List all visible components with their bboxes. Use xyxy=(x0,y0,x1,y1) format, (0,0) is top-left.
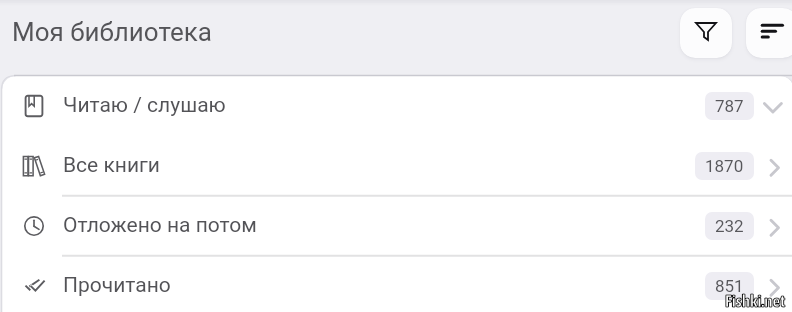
staticText: Моя библиотека xyxy=(12,17,212,47)
staticText: 1870 xyxy=(705,156,744,176)
staticText: Fishki.net xyxy=(725,291,786,310)
staticText: Прочитано xyxy=(63,273,171,298)
staticText: Fishki.net xyxy=(725,291,786,310)
staticText: Все книги xyxy=(63,153,160,178)
staticText: 787 xyxy=(715,96,744,116)
button[interactable]: Filter xyxy=(680,8,732,58)
button[interactable]: Sort xyxy=(746,8,792,58)
button[interactable]: Отложено на потом xyxy=(2,196,792,256)
button[interactable]: Читаю / слушаю xyxy=(2,76,792,136)
staticText: Читаю / слушаю xyxy=(63,93,226,118)
button[interactable]: Прочитано xyxy=(2,256,792,312)
staticText: 851 xyxy=(715,276,744,296)
staticText: Отложено на потом xyxy=(63,213,257,238)
button[interactable]: Все книги xyxy=(2,136,792,196)
staticText: 232 xyxy=(715,216,744,236)
